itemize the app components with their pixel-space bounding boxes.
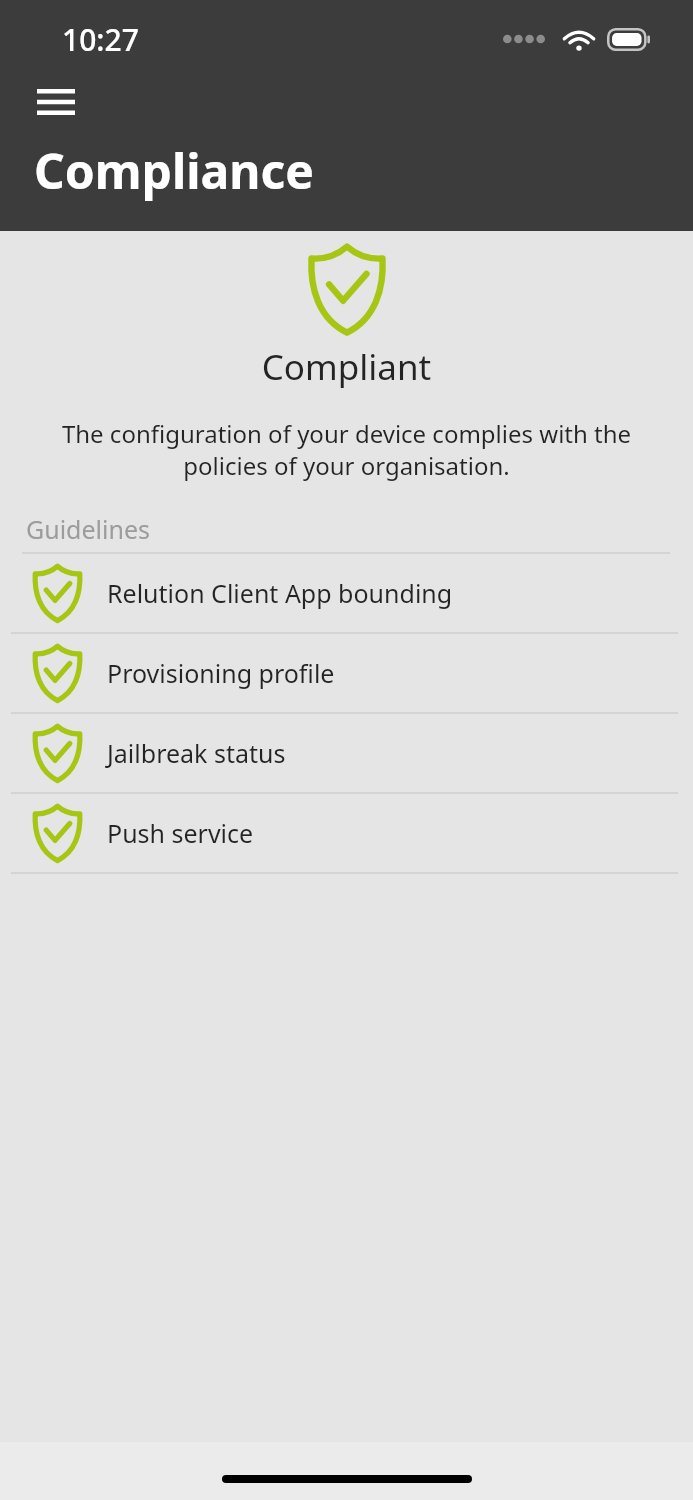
button[interactable]: Push service: [0, 794, 693, 874]
staticText: Jailbreak status: [107, 736, 286, 770]
button[interactable]: Relution Client App bounding: [0, 554, 693, 634]
button[interactable]: Open navigation menu: [26, 78, 86, 126]
button[interactable]: Jailbreak status: [0, 714, 693, 794]
button[interactable]: Provisioning profile: [0, 634, 693, 714]
staticText: Compliance: [34, 138, 314, 203]
staticText: Push service: [107, 816, 254, 850]
staticText: Compliant: [0, 343, 693, 391]
staticText: The configuration of your device complie…: [34, 417, 659, 482]
staticText: Relution Client App bounding: [107, 576, 453, 610]
staticText: Provisioning profile: [107, 656, 335, 690]
staticText: Guidelines: [26, 512, 151, 546]
staticText: 10:27: [62, 19, 139, 60]
